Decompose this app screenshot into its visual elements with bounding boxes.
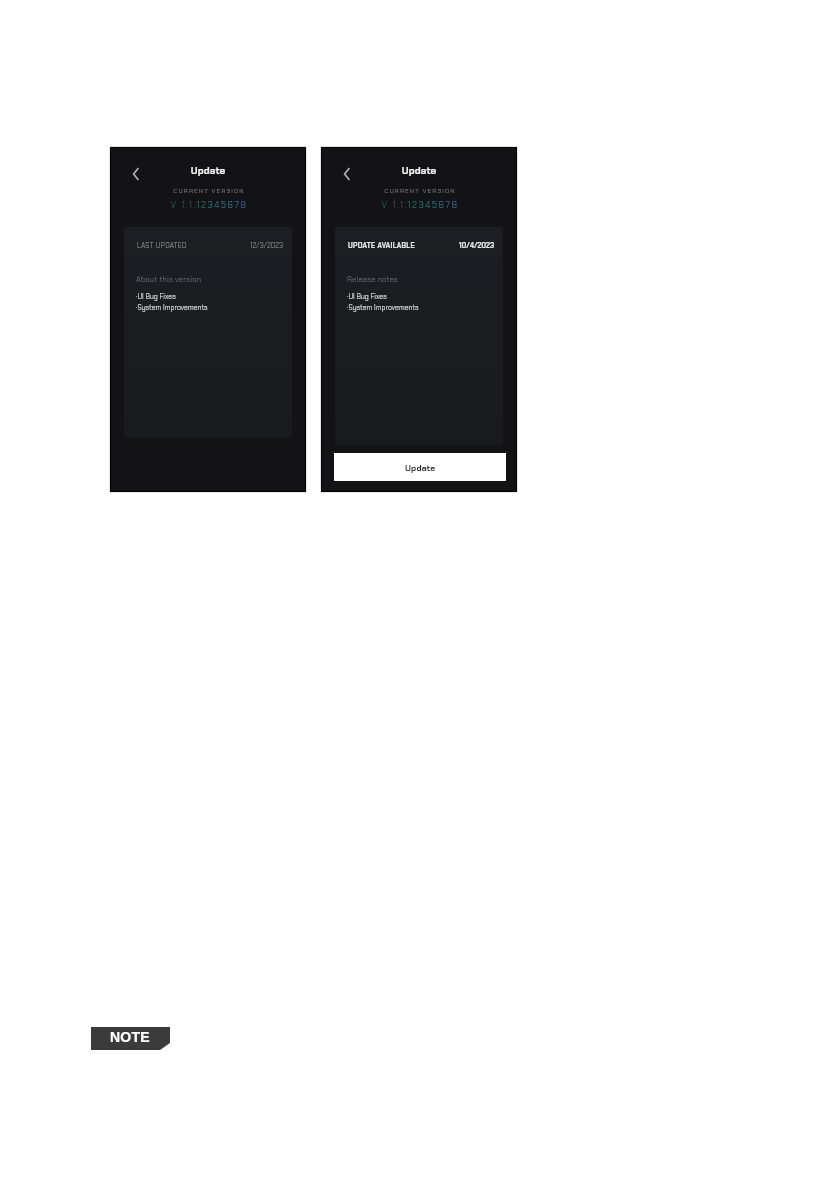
staticText: ·UI Bug Fixes (136, 292, 176, 301)
staticText: Update (405, 462, 436, 473)
staticText: About this version (136, 274, 202, 284)
staticText: Release notes (347, 274, 398, 284)
staticText: 12/3/2023 (250, 241, 284, 250)
button[interactable]: Update (334, 453, 506, 481)
staticText: V 1.1.12345678 (322, 199, 518, 211)
staticText: 10/4/2023 (459, 241, 495, 250)
staticText: CURRENT VERSION (111, 187, 307, 195)
staticText: NOTE (110, 1029, 150, 1045)
staticText: ·UI Bug Fixes (347, 292, 387, 301)
staticText: LAST UPDATED (137, 241, 187, 250)
staticText: ·System Improvements (347, 303, 419, 312)
button[interactable]: Back (129, 167, 143, 181)
staticText: CURRENT VERSION (322, 187, 518, 195)
staticText: UPDATE AVAILABLE (348, 241, 415, 250)
staticText: Update (321, 164, 517, 177)
staticText: Update (110, 164, 306, 177)
button[interactable]: Back (340, 167, 354, 181)
staticText: V 1.1.12345678 (111, 199, 307, 211)
staticText: ·System Improvements (136, 303, 208, 312)
